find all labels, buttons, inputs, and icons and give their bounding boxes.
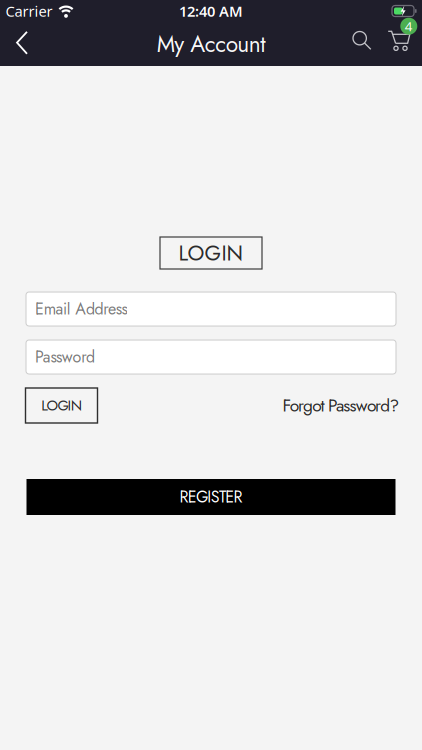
staticText: Email Address	[35, 297, 127, 320]
button[interactable]: Search	[342, 22, 378, 66]
button[interactable]: LOGIN	[25, 388, 97, 423]
staticText: Forgot Password?	[282, 393, 399, 418]
staticText: Password	[35, 345, 95, 368]
button[interactable]: Back	[0, 22, 42, 66]
staticText: Carrier	[5, 1, 52, 21]
staticText: My Account	[157, 28, 265, 60]
staticText: LOGIN	[178, 238, 243, 268]
button[interactable]: Cart	[378, 22, 422, 66]
button[interactable]: Forgot Password?	[282, 393, 399, 418]
staticText: LOGIN	[41, 395, 82, 416]
button[interactable]: REGISTER	[26, 479, 395, 515]
staticText: REGISTER	[179, 485, 243, 508]
staticText: 12:40 AM	[179, 1, 243, 21]
staticText: 4	[405, 17, 413, 35]
